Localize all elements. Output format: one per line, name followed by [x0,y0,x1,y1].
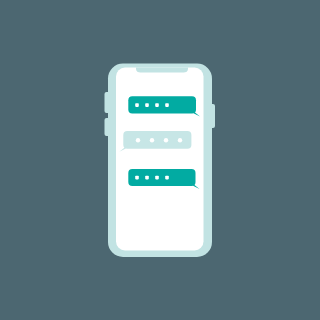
button[interactable]: Chat illustration [0,0,320,320]
